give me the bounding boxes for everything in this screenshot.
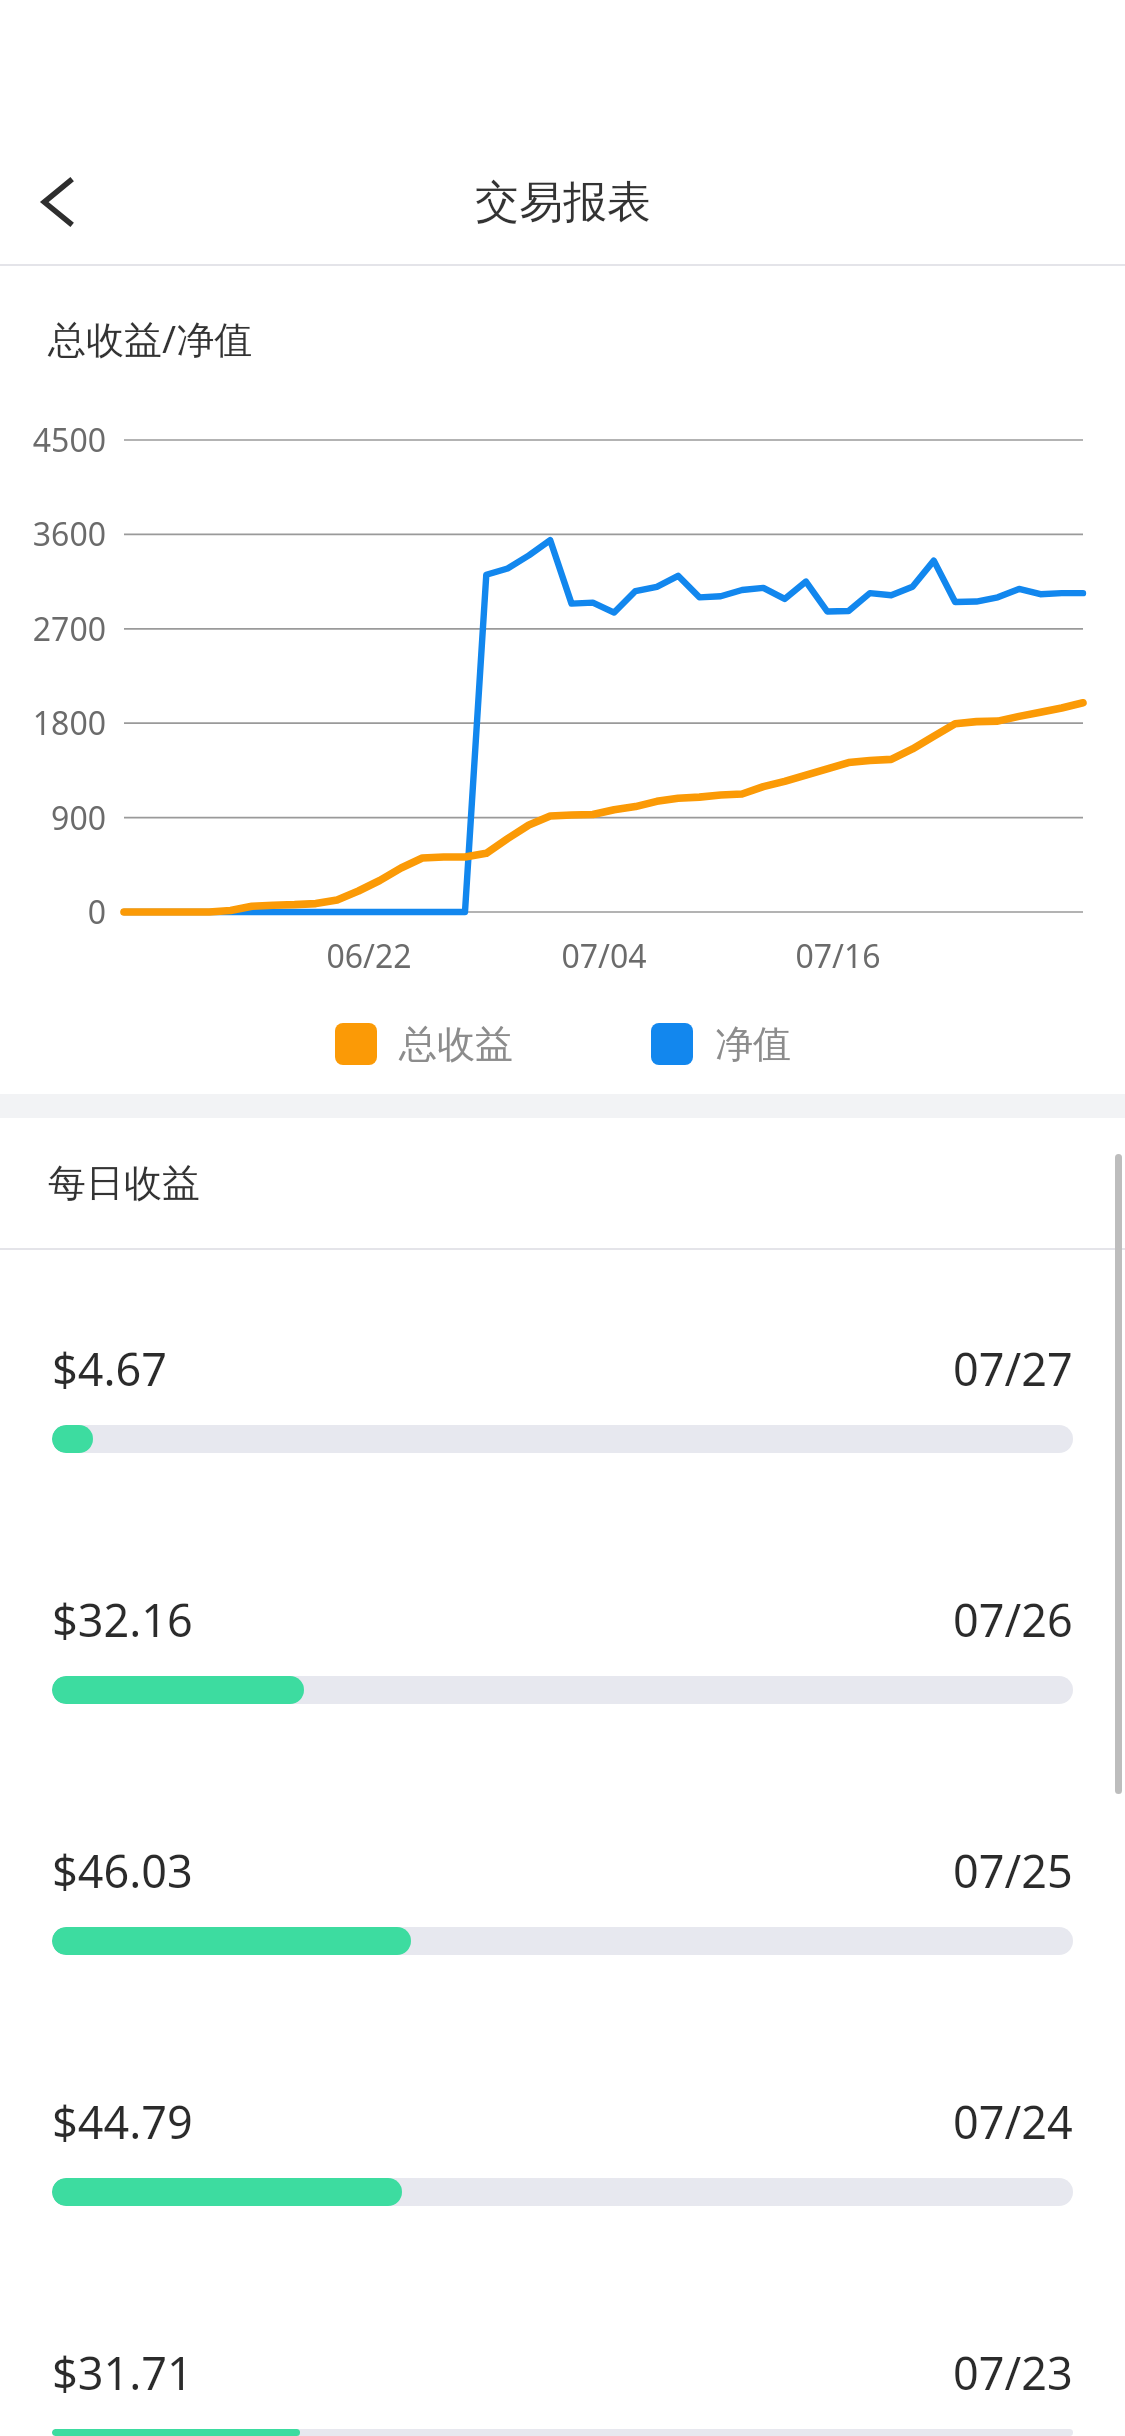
staticText: 07/24 [953, 2091, 1073, 2152]
button[interactable]: 总收益 [331, 1012, 517, 1076]
staticText: 总收益/净值 [48, 312, 253, 364]
staticText: 2700 [32, 607, 106, 651]
staticText: 4500 [32, 418, 106, 462]
staticText: $4.67 [52, 1338, 168, 1399]
staticText: 每日收益 [48, 1159, 200, 1207]
staticText: 07/23 [953, 2342, 1073, 2403]
staticText: $46.03 [52, 1840, 193, 1901]
staticText: 总收益 [399, 1020, 513, 1068]
staticText: 07/04 [561, 934, 647, 978]
staticText: 1800 [32, 701, 106, 745]
button[interactable]: $31.71 [0, 2306, 1125, 2436]
staticText: $44.79 [52, 2091, 193, 2152]
staticText: $32.16 [52, 1589, 193, 1650]
button[interactable]: $32.16 [0, 1553, 1125, 1804]
staticText: 3600 [32, 512, 106, 556]
staticText: 07/25 [953, 1840, 1073, 1901]
button[interactable]: $44.79 [0, 2055, 1125, 2306]
staticText: 07/26 [953, 1589, 1073, 1650]
staticText: 0 [87, 890, 106, 934]
button[interactable]: $4.67 [0, 1250, 1125, 1553]
staticText: 净值 [715, 1020, 791, 1068]
staticText: $31.71 [52, 2342, 193, 2403]
button[interactable]: Back [0, 143, 118, 261]
staticText: 07/16 [795, 934, 881, 978]
staticText: 交易报表 [475, 175, 651, 230]
button[interactable]: $46.03 [0, 1804, 1125, 2055]
staticText: 06/22 [326, 934, 412, 978]
staticText: 07/27 [953, 1338, 1073, 1399]
staticText: 900 [51, 796, 106, 840]
button[interactable]: 净值 [647, 1012, 795, 1076]
